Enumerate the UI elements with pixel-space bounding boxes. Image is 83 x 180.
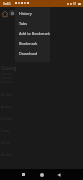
staticText: History [19, 11, 32, 16]
button[interactable]: My Acc [1, 88, 15, 100]
button[interactable]: Recent apps [19, 169, 28, 180]
button[interactable]: More options [14, 10, 20, 16]
button[interactable]: Bookmark [15, 38, 50, 48]
button[interactable]: History [15, 8, 50, 18]
staticText: Download [19, 51, 38, 56]
button[interactable]: Download [15, 48, 50, 58]
staticText: Accou [1, 104, 11, 109]
button[interactable]: Tabs [15, 18, 50, 28]
staticText: Bookmark [19, 41, 38, 46]
button[interactable]: Home [1, 10, 8, 17]
button[interactable]: Tabs [9, 10, 15, 16]
button[interactable]: Add to Bookmark [15, 28, 50, 38]
staticText: Goog [1, 64, 17, 72]
staticText: Add to Bookmark [19, 31, 50, 36]
staticText: Tabs [19, 21, 28, 26]
button[interactable]: Busine [1, 148, 15, 160]
button[interactable]: Images [1, 75, 13, 79]
staticText: Vo4G [3, 2, 11, 6]
button[interactable]: Home [37, 169, 46, 180]
staticText: My Acc [1, 92, 13, 97]
staticText: 51 [73, 2, 77, 6]
staticText: Image [1, 116, 12, 121]
staticText: Schol [1, 140, 10, 145]
staticText: Creat [1, 128, 10, 133]
staticText: Images [1, 75, 13, 79]
staticText: Busine [1, 152, 13, 157]
button[interactable]: Back [54, 169, 63, 180]
